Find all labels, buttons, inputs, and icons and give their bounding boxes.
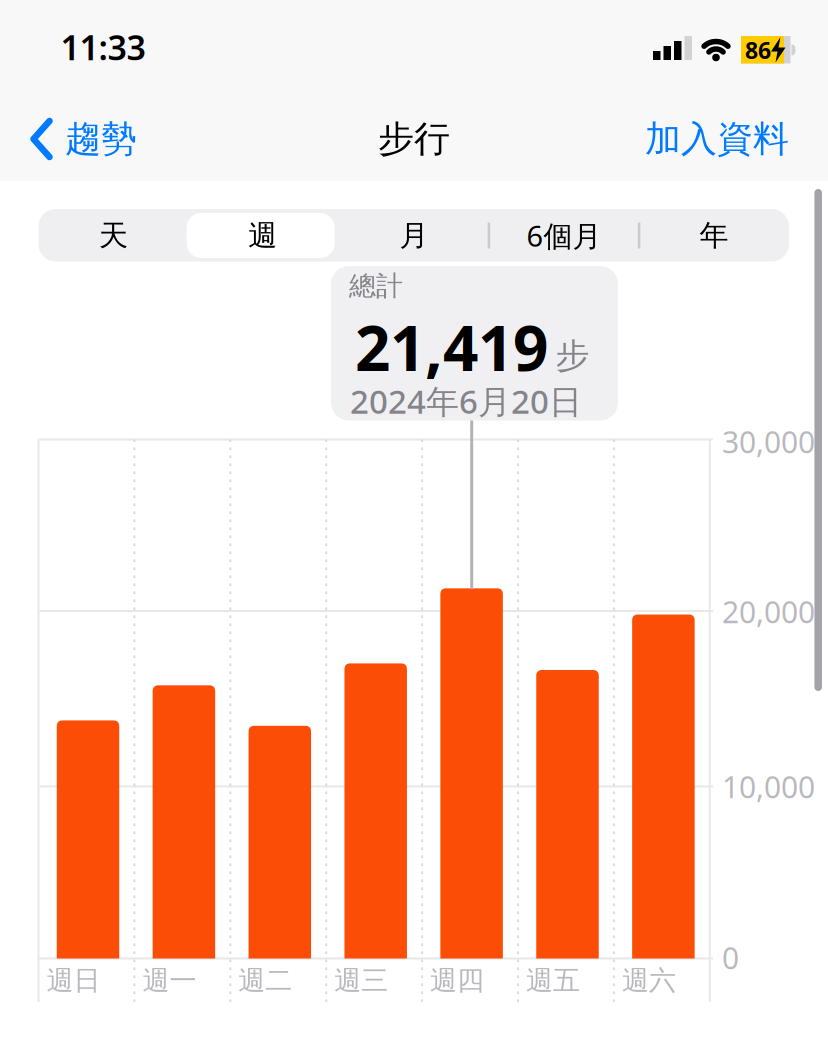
staticText: 2024年6月20日	[350, 378, 582, 423]
button[interactable]: 天	[40, 210, 188, 260]
staticText: 20,000	[722, 591, 815, 632]
button[interactable]: 月	[340, 210, 488, 260]
staticText: 天	[99, 217, 128, 254]
staticText: 週六	[622, 963, 676, 997]
button[interactable]: 年	[640, 210, 788, 260]
staticText: 11:33	[60, 24, 145, 70]
staticText: 年	[700, 217, 729, 254]
staticText: 週三	[334, 963, 388, 997]
staticText: 加入資料	[645, 116, 789, 162]
staticText: 6個月	[526, 216, 601, 255]
staticText: 週四	[430, 963, 484, 997]
staticText: 10,000	[722, 766, 815, 807]
staticText: 週一	[142, 963, 196, 997]
staticText: 30,000	[722, 421, 815, 462]
staticText: 步行	[378, 116, 450, 162]
staticText: 週日	[46, 963, 100, 997]
button[interactable]: 返回趨勢	[31, 116, 137, 162]
staticText: 21,419	[355, 305, 548, 389]
staticText: 週五	[526, 963, 580, 997]
button[interactable]: 加入資料	[622, 107, 812, 171]
staticText: 週	[248, 217, 277, 254]
staticText: 0	[722, 937, 739, 978]
staticText: 步	[555, 335, 589, 377]
staticText: 86	[745, 34, 771, 66]
button[interactable]: 週	[189, 210, 337, 260]
button[interactable]: 6個月	[490, 210, 638, 260]
staticText: 月	[399, 217, 428, 254]
staticText: 週二	[238, 963, 292, 997]
staticText: 總計	[349, 269, 403, 303]
staticText: 趨勢	[65, 116, 137, 162]
